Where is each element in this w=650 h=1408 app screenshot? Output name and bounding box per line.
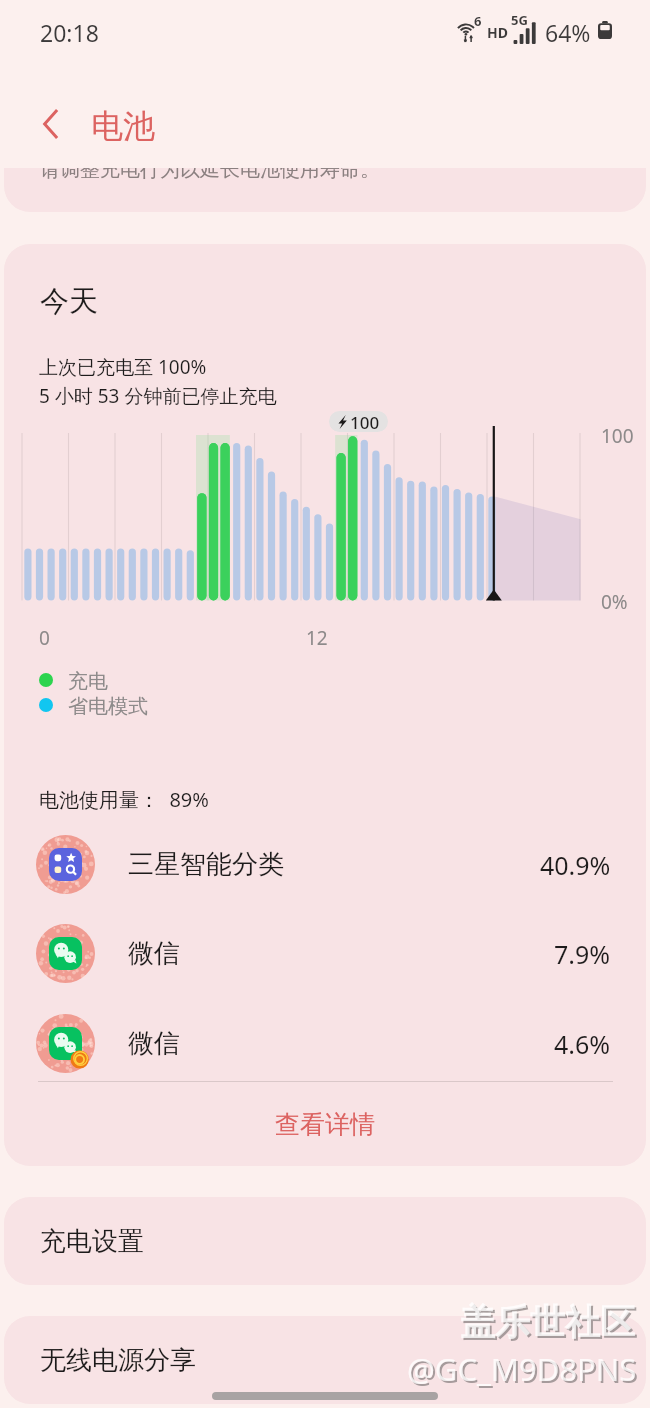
staticText: 100 [601, 423, 634, 449]
staticText: 12 [306, 625, 328, 651]
staticText: 省电模式 [68, 694, 148, 719]
staticText: HD [487, 23, 508, 42]
button[interactable]: 请调整充电行为以延长电池使用寿命。 [4, 168, 646, 212]
staticText: 100 [350, 411, 380, 432]
staticText: 上次已充电至 100% [39, 354, 207, 380]
staticText: 20:18 [40, 17, 99, 48]
staticText: 7.9% [554, 937, 611, 971]
staticText: 0 [39, 625, 50, 651]
button[interactable]: 微信 [4, 999, 646, 1088]
staticText: 盖乐世社区 [462, 1302, 637, 1346]
staticText: 查看详情 [275, 1109, 375, 1140]
staticText: 盖乐世社区 [460, 1300, 635, 1344]
staticText: 无线电源分享 [40, 1344, 196, 1377]
staticText: 电池使用量： 89% [39, 786, 209, 813]
staticText: 5 小时 53 分钟前已停止充电 [39, 383, 277, 409]
staticText: 微信 [128, 937, 180, 970]
button[interactable]: Back [22, 94, 82, 154]
button[interactable]: 无线电源分享 [4, 1316, 646, 1404]
staticText: 充电 [68, 669, 108, 694]
staticText: 5G [511, 11, 528, 29]
button[interactable]: 微信 [4, 909, 646, 998]
staticText: 4.6% [554, 1027, 611, 1061]
staticText: 电池 [91, 106, 155, 146]
staticText: 今天 [40, 283, 98, 320]
staticText: 40.9% [540, 848, 611, 882]
button[interactable]: 三星智能分类 [4, 820, 646, 909]
staticText: 64% [545, 17, 591, 48]
staticText: 微信 [128, 1027, 180, 1060]
staticText: 6 [474, 12, 482, 30]
staticText: @GC_M9D8PNS [407, 1348, 637, 1390]
staticText: 0% [601, 589, 628, 615]
button[interactable]: 查看详情 [4, 1082, 646, 1166]
staticText: @GC_M9D8PNS [409, 1350, 639, 1392]
button[interactable]: 充电设置 [4, 1197, 646, 1285]
staticText: 充电设置 [40, 1225, 144, 1258]
staticText: 三星智能分类 [128, 848, 284, 881]
staticText: 请调整充电行为以延长电池使用寿命。 [40, 168, 380, 182]
